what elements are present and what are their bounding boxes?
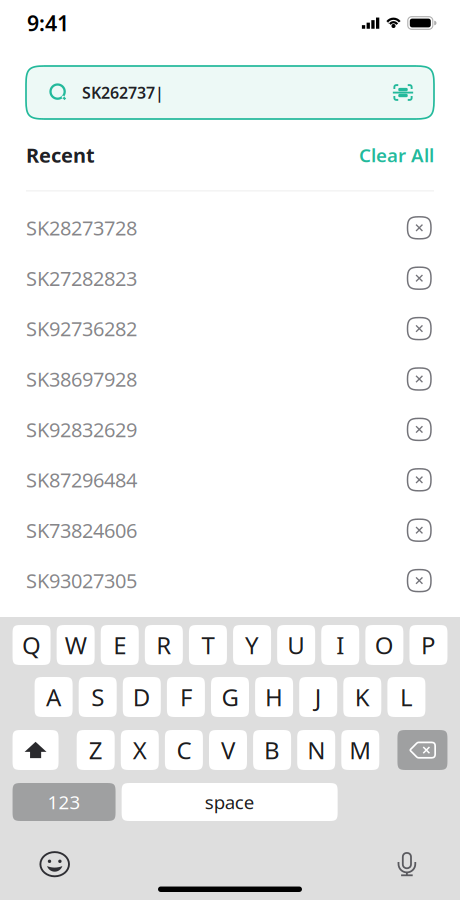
button[interactable]: SK93027305 — [0, 555, 460, 606]
button[interactable]: R — [145, 625, 183, 665]
staticText: C — [176, 734, 191, 766]
staticText: J — [315, 681, 322, 713]
staticText: N — [307, 734, 325, 766]
staticText: H — [265, 681, 283, 713]
staticText: P — [421, 629, 436, 661]
staticText: SK27282823 — [26, 265, 137, 291]
staticText: V — [221, 734, 235, 766]
staticText: SK87296484 — [26, 466, 137, 493]
button[interactable]: O — [365, 625, 403, 665]
button[interactable]: space — [122, 783, 338, 821]
button[interactable]: J — [299, 677, 337, 717]
staticText: E — [113, 629, 126, 661]
button[interactable]: B — [253, 730, 291, 770]
button[interactable]: SK38697928 — [0, 354, 460, 404]
staticText: O — [375, 629, 394, 661]
button[interactable]: D — [123, 677, 161, 717]
button[interactable]: F — [167, 677, 205, 717]
staticText: 123 — [48, 790, 81, 814]
staticText: K — [355, 681, 370, 713]
button[interactable]: X — [121, 730, 159, 770]
staticText: D — [133, 681, 151, 713]
staticText: L — [400, 681, 413, 713]
button[interactable]: I — [321, 625, 359, 665]
staticText: Y — [245, 629, 259, 661]
button[interactable]: Shift — [13, 730, 59, 770]
button[interactable]: T — [189, 625, 227, 665]
button[interactable]: SK27282823 — [0, 253, 460, 303]
button[interactable]: SK87296484 — [0, 455, 460, 505]
staticText: T — [201, 629, 214, 661]
button[interactable]: Clear All — [359, 143, 434, 167]
button[interactable]: L — [387, 677, 425, 717]
button[interactable]: Q — [13, 625, 51, 665]
button[interactable]: K — [343, 677, 381, 717]
staticText: M — [349, 734, 371, 766]
button[interactable]: H — [255, 677, 293, 717]
staticText: SK93027305 — [26, 567, 137, 594]
staticText: W — [65, 629, 87, 661]
button[interactable]: U — [277, 625, 315, 665]
button[interactable]: 123 — [13, 783, 116, 821]
button[interactable]: Z — [77, 730, 115, 770]
staticText: Recent — [26, 142, 95, 168]
staticText: SK73824606 — [26, 517, 137, 543]
staticText: A — [46, 681, 61, 713]
button[interactable]: M — [341, 730, 379, 770]
button[interactable]: N — [297, 730, 335, 770]
button[interactable]: SK28273728 — [0, 203, 460, 253]
button[interactable]: G — [211, 677, 249, 717]
staticText: S — [91, 681, 104, 713]
button[interactable]: Dictate — [385, 844, 429, 884]
button[interactable]: SK73824606 — [0, 505, 460, 555]
staticText: G — [221, 681, 238, 713]
button[interactable]: E — [101, 625, 139, 665]
staticText: Z — [89, 734, 103, 766]
button[interactable]: Delete — [397, 730, 447, 770]
staticText: SK92832629 — [26, 416, 137, 443]
button[interactable]: V — [209, 730, 247, 770]
button[interactable]: W — [57, 625, 95, 665]
staticText: 9:41 — [27, 9, 69, 37]
button[interactable]: S — [79, 677, 117, 717]
button[interactable]: Y — [233, 625, 271, 665]
button[interactable]: Scan barcode — [381, 70, 425, 114]
staticText: SK262737| — [82, 82, 164, 103]
staticText: B — [264, 734, 280, 766]
staticText: SK28273728 — [26, 214, 137, 241]
staticText: I — [336, 629, 344, 661]
staticText: U — [287, 629, 305, 661]
staticText: SK92736282 — [26, 315, 137, 342]
staticText: Clear All — [359, 143, 434, 167]
button[interactable]: P — [409, 625, 447, 665]
button[interactable]: Emoji — [33, 844, 77, 884]
button[interactable]: A — [35, 677, 73, 717]
staticText: space — [205, 790, 255, 814]
staticText: X — [133, 734, 147, 766]
button[interactable]: SK92832629 — [0, 404, 460, 455]
staticText: SK38697928 — [26, 366, 137, 392]
staticText: Q — [22, 629, 41, 661]
staticText: F — [180, 681, 192, 713]
button[interactable]: C — [165, 730, 203, 770]
button[interactable]: SK92736282 — [0, 303, 460, 354]
staticText: R — [156, 629, 171, 661]
